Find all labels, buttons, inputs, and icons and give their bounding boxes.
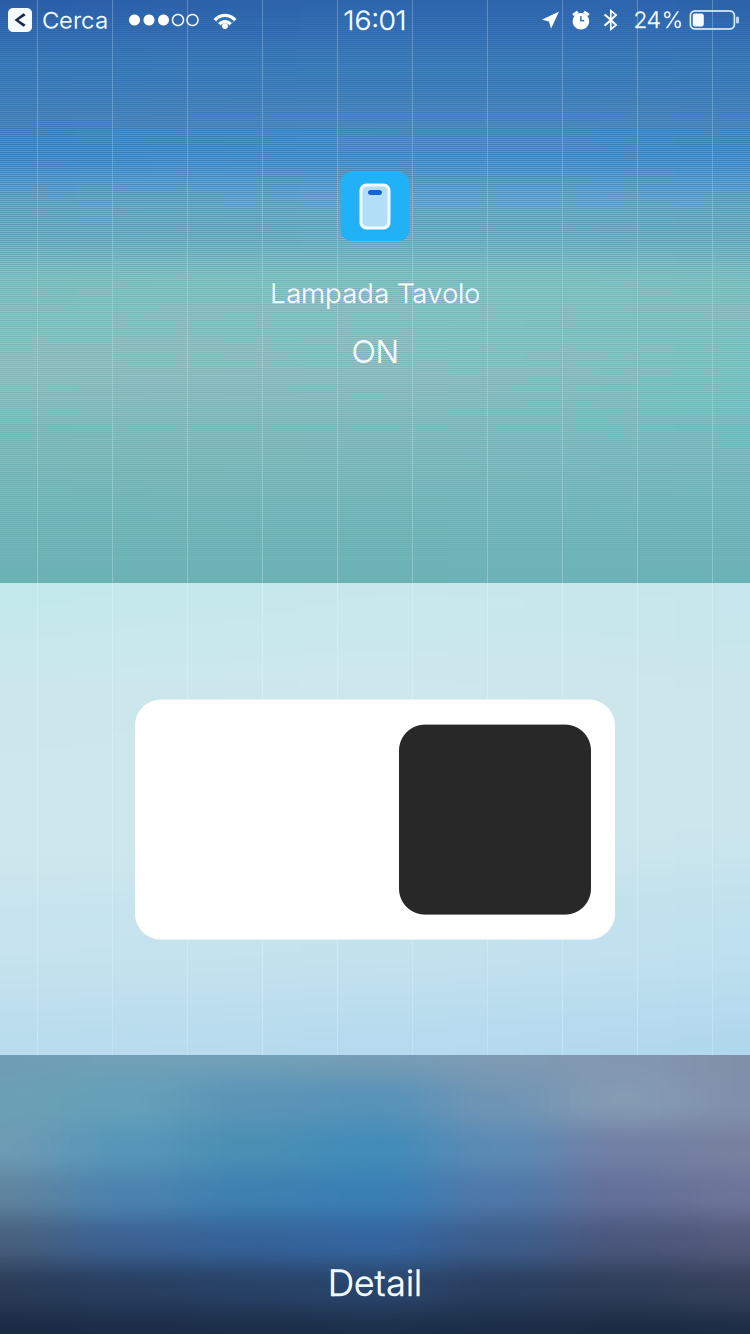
button[interactable]	[135, 700, 615, 940]
staticText: Detail	[328, 1260, 422, 1305]
button[interactable]: Cerca	[0, 0, 110, 40]
staticText: 16:01	[343, 3, 406, 37]
staticText: 24%	[633, 6, 683, 34]
staticText: ON	[351, 332, 398, 371]
staticText: Cerca	[42, 5, 108, 34]
staticText: Lampada Tavolo	[270, 276, 480, 310]
button[interactable]: Detail	[0, 1261, 750, 1305]
